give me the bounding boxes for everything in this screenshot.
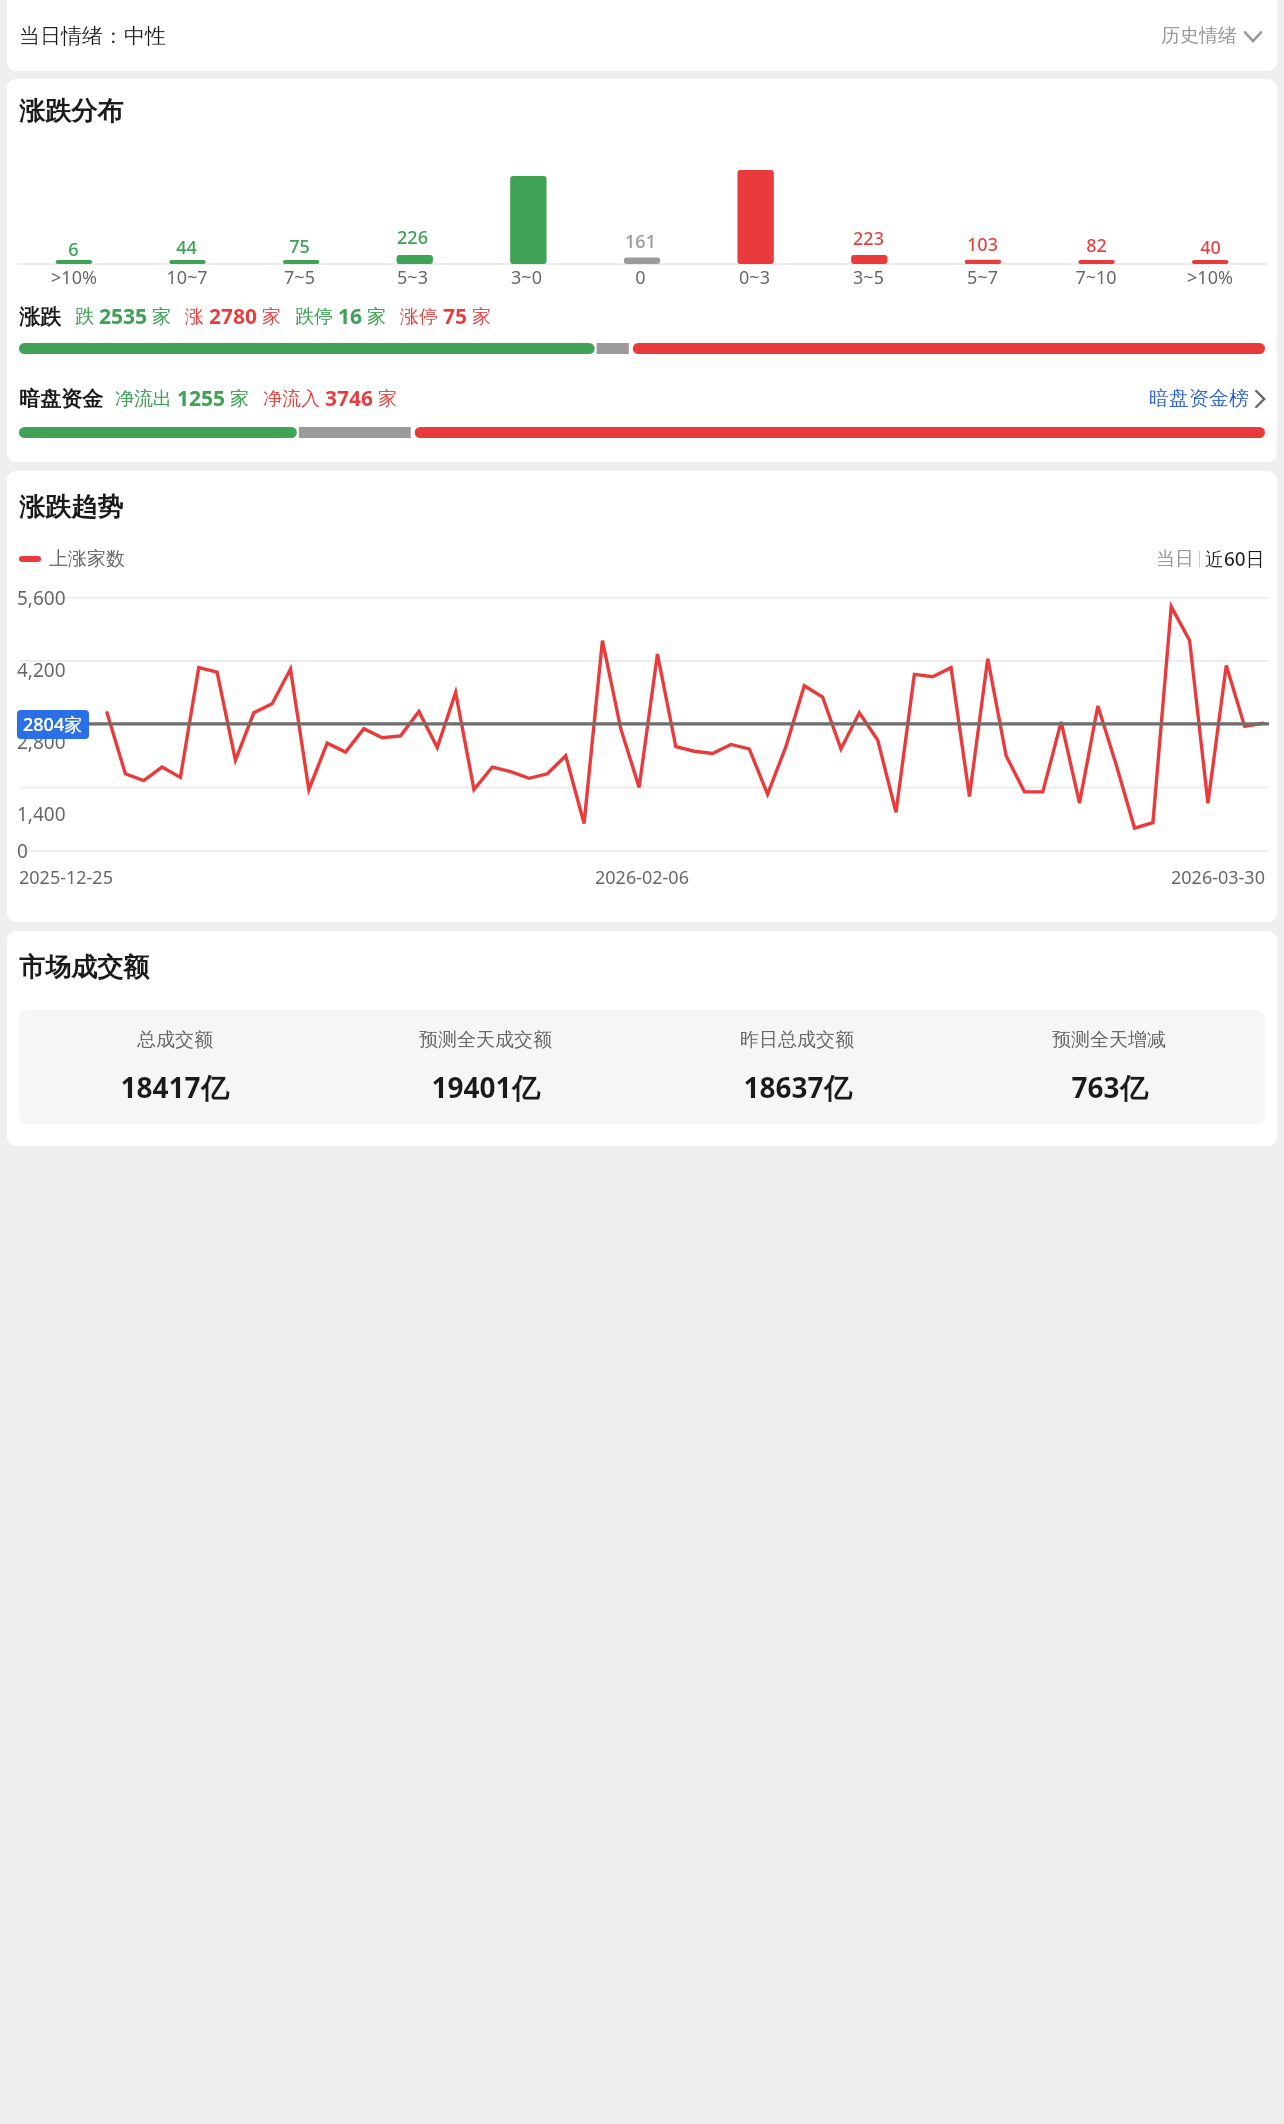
staticText: 16: [338, 302, 363, 331]
staticText: 2780: [209, 302, 258, 331]
staticText: 763亿: [1071, 1068, 1148, 1106]
staticText: 家: [378, 387, 397, 411]
staticText: 家: [230, 387, 249, 411]
staticText: >10%: [1187, 265, 1233, 290]
staticText: 75: [289, 234, 310, 259]
staticText: 5,600: [17, 585, 66, 611]
staticText: 2025-12-25: [19, 865, 113, 890]
staticText: 家: [367, 305, 386, 329]
staticText: 总成交额: [137, 1028, 213, 1052]
staticText: 2026-02-06: [595, 865, 689, 890]
staticText: 4,200: [17, 657, 66, 683]
staticText: 昨日总成交额: [740, 1028, 854, 1052]
staticText: 涨停: [400, 305, 438, 329]
staticText: 0: [635, 265, 646, 290]
staticText: 103: [967, 232, 998, 257]
staticText: 家: [152, 305, 171, 329]
staticText: 3746: [325, 384, 374, 413]
staticText: 7~5: [284, 265, 315, 290]
staticText: 暗盘资金: [19, 386, 103, 412]
staticText: 当日情绪：中性: [19, 23, 166, 49]
staticText: 净流出: [115, 387, 172, 411]
staticText: >10%: [51, 265, 97, 290]
staticText: 82: [1086, 233, 1107, 258]
staticText: 涨: [185, 305, 204, 329]
staticText: 226: [397, 225, 428, 250]
button[interactable]: 当日: [1156, 547, 1194, 571]
staticText: 19401亿: [431, 1068, 540, 1106]
staticText: 40: [1200, 235, 1221, 260]
staticText: 223: [853, 226, 884, 251]
staticText: 暗盘资金榜: [1149, 386, 1249, 411]
button[interactable]: 暗盘资金榜: [1149, 380, 1265, 417]
staticText: 预测全天增减: [1052, 1028, 1166, 1052]
staticText: 上涨家数: [49, 547, 125, 571]
staticText: 7~10: [1075, 265, 1117, 290]
staticText: 5~3: [397, 265, 428, 290]
staticText: 跌: [75, 305, 94, 329]
staticText: 涨跌分布: [19, 95, 123, 128]
staticText: 0: [17, 838, 28, 864]
staticText: 家: [472, 305, 491, 329]
staticText: 2804家: [23, 712, 83, 737]
staticText: 历史情绪: [1161, 24, 1237, 48]
staticText: 2535: [99, 302, 148, 331]
staticText: 1,400: [17, 801, 66, 827]
button[interactable]: 近60日: [1205, 546, 1265, 572]
staticText: 涨跌趋势: [19, 491, 123, 524]
staticText: 5~7: [967, 265, 998, 290]
staticText: 跌停: [295, 305, 333, 329]
button[interactable]: 涨跌: [7, 294, 1277, 339]
staticText: 44: [176, 235, 197, 260]
staticText: 2026-03-30: [1171, 865, 1265, 890]
staticText: 2,800: [17, 729, 66, 755]
staticText: 75: [443, 302, 468, 331]
staticText: 家: [262, 305, 281, 329]
staticText: 净流入: [263, 387, 320, 411]
button[interactable]: 历史情绪: [1157, 18, 1265, 54]
staticText: 6: [68, 237, 79, 262]
staticText: 0~3: [739, 265, 770, 290]
staticText: 18637亿: [743, 1068, 852, 1106]
staticText: 3~0: [511, 265, 542, 290]
staticText: 1255: [177, 384, 226, 413]
staticText: 涨跌: [19, 304, 61, 330]
staticText: 市场成交额: [19, 951, 149, 984]
staticText: 10~7: [166, 265, 208, 290]
staticText: 预测全天成交额: [419, 1028, 552, 1052]
staticText: 161: [625, 229, 656, 254]
staticText: 3~5: [853, 265, 884, 290]
staticText: 18417亿: [120, 1068, 229, 1106]
